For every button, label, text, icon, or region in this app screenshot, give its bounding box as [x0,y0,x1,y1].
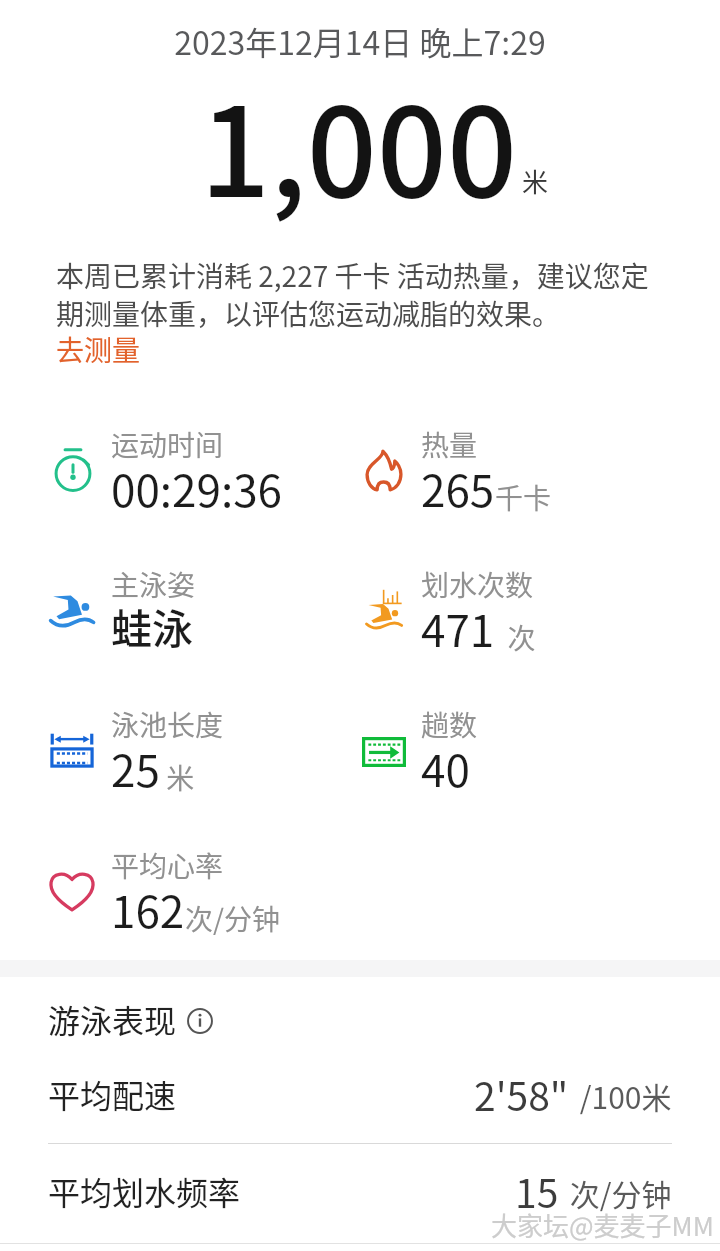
staticText: 次 [495,617,536,658]
staticText: 162 [111,877,185,941]
staticText: 主泳姿 [111,564,196,605]
staticText: 游泳表现 [48,996,177,1042]
staticText: 蛙泳 [111,596,193,655]
button[interactable]: 主泳姿 [55,564,315,664]
staticText: 00:29:36 [111,456,282,520]
staticText: 平均划水频率 [48,1168,241,1214]
staticText: 平均心率 [111,845,224,886]
staticText: 去测量 [56,329,141,370]
staticText: 2023年12月14日 晚上7:29 [0,18,720,64]
staticText: 米 [160,757,195,798]
staticText: 次/分钟 [563,1171,672,1214]
staticText: 米 [522,162,549,200]
button[interactable]: 趟数 [365,704,625,809]
button[interactable]: 去测量 [56,329,141,370]
staticText: 趟数 [421,704,478,745]
staticText: 次/分钟 [185,898,280,939]
staticText: 25 [111,736,160,800]
button[interactable]: 平均配速 [0,1053,720,1125]
staticText: 千卡 [495,477,552,518]
staticText: 15 [515,1163,559,1219]
staticText: 大家坛@麦麦子MM [491,1206,714,1244]
staticText: 本周已累计消耗 2,227 千卡 活动热量，建议您定期测量体重，以评估您运动减脂… [56,255,660,333]
staticText: 泳池长度 [111,704,224,745]
button[interactable]: 平均心率 [55,845,315,950]
button[interactable]: 运动时间 [55,424,315,529]
button[interactable]: 说明 [187,1008,213,1034]
staticText: 运动时间 [111,424,224,465]
button[interactable]: 划水次数 [365,564,625,669]
staticText: 热量 [421,424,478,465]
staticText: 平均配速 [48,1071,177,1117]
staticText: 265 [421,456,495,520]
button[interactable]: 热量 [365,424,625,529]
button[interactable]: 平均划水频率 [0,1150,720,1222]
staticText: 2'58" [474,1066,569,1122]
staticText: /100米 [573,1074,672,1117]
staticText: 1,000 [200,54,518,232]
button[interactable]: 泳池长度 [55,704,315,809]
staticText: 471 [421,596,495,660]
staticText: 40 [421,736,470,800]
staticText: 划水次数 [421,564,534,605]
